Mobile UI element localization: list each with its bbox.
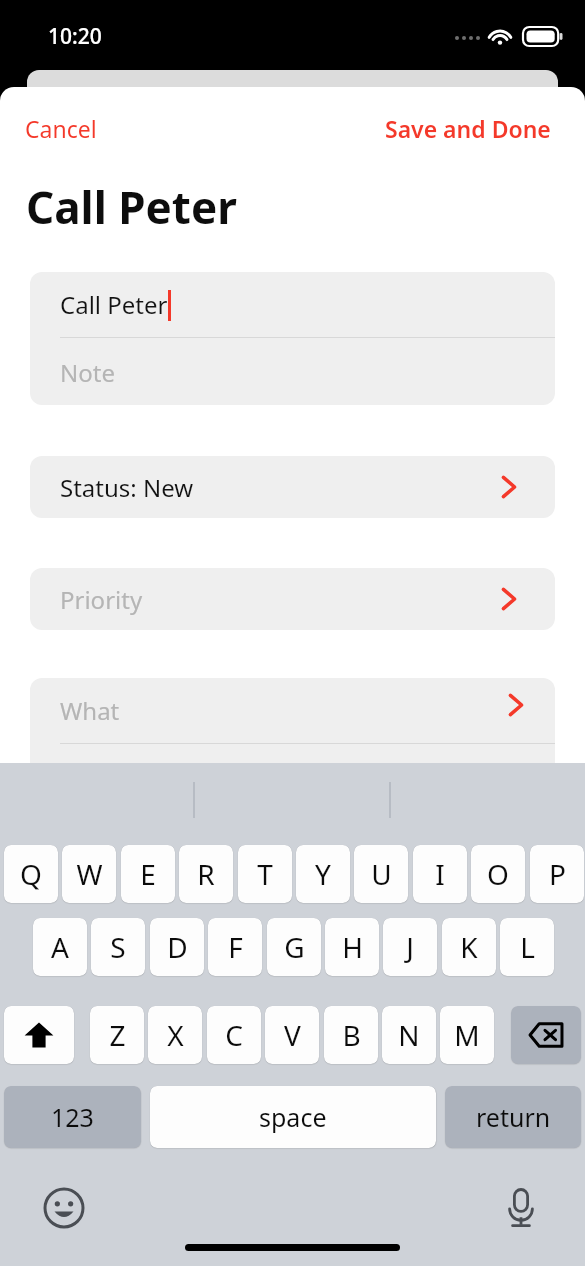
staticText: return xyxy=(476,1100,551,1134)
staticText: Priority xyxy=(60,583,143,616)
button[interactable]: space xyxy=(150,1086,436,1148)
button[interactable]: Dictation xyxy=(495,1182,547,1234)
button[interactable]: J xyxy=(383,918,437,976)
button[interactable]: Backspace xyxy=(511,1006,581,1064)
staticText: Note xyxy=(60,356,115,389)
button[interactable]: V xyxy=(265,1006,319,1064)
button[interactable]: What xyxy=(30,678,555,798)
staticText: Cancel xyxy=(25,113,97,144)
button[interactable]: Save and Done xyxy=(376,107,560,150)
button[interactable]: U xyxy=(354,845,408,903)
button[interactable]: L xyxy=(500,918,554,976)
button[interactable]: 123 xyxy=(4,1086,141,1148)
button[interactable]: Status: New xyxy=(30,456,555,518)
button[interactable]: M xyxy=(440,1006,494,1064)
button[interactable]: A xyxy=(33,918,87,976)
button[interactable]: G xyxy=(267,918,321,976)
button[interactable]: W xyxy=(62,845,116,903)
staticText: N xyxy=(398,1016,420,1054)
button[interactable]: K xyxy=(442,918,496,976)
button[interactable]: I xyxy=(413,845,467,903)
staticText: M xyxy=(454,1016,480,1054)
button[interactable]: H xyxy=(325,918,379,976)
button[interactable]: P xyxy=(530,845,584,903)
button[interactable]: return xyxy=(445,1086,581,1148)
staticText: V xyxy=(284,1016,301,1054)
button[interactable]: B xyxy=(324,1006,378,1064)
button[interactable]: Priority xyxy=(30,568,555,630)
staticText: Y xyxy=(315,855,331,893)
staticText: P xyxy=(549,855,566,893)
staticText: Call Peter xyxy=(60,288,168,321)
staticText: F xyxy=(228,928,243,966)
staticText: I xyxy=(435,855,445,893)
staticText: B xyxy=(342,1016,361,1054)
button[interactable]: T xyxy=(238,845,292,903)
staticText: K xyxy=(460,928,478,966)
staticText: O xyxy=(487,855,509,893)
staticText: U xyxy=(371,855,392,893)
staticText: G xyxy=(284,928,305,966)
staticText: S xyxy=(110,928,126,966)
staticText: R xyxy=(197,855,215,893)
button[interactable]: Emoji keyboard xyxy=(38,1182,90,1234)
staticText: W xyxy=(76,855,103,893)
button[interactable]: S xyxy=(91,918,145,976)
button[interactable]: Y xyxy=(296,845,350,903)
staticText: Z xyxy=(109,1016,126,1054)
staticText: Call Peter xyxy=(26,177,237,237)
button[interactable]: Call Peter xyxy=(30,272,555,405)
staticText: H xyxy=(342,928,363,966)
staticText: J xyxy=(406,928,414,966)
button[interactable]: Cancel xyxy=(16,107,106,150)
button[interactable]: O xyxy=(471,845,525,903)
staticText: 123 xyxy=(51,1100,94,1134)
staticText: 10:20 xyxy=(48,22,102,51)
button[interactable]: X xyxy=(148,1006,202,1064)
button[interactable]: D xyxy=(150,918,204,976)
button[interactable]: E xyxy=(121,845,175,903)
staticText: X xyxy=(167,1016,184,1054)
staticText: Q xyxy=(20,855,42,893)
staticText: A xyxy=(51,928,69,966)
button[interactable]: Shift xyxy=(4,1006,74,1064)
button[interactable]: Q xyxy=(4,845,58,903)
staticText: C xyxy=(225,1016,243,1054)
button[interactable]: Z xyxy=(90,1006,144,1064)
staticText: E xyxy=(140,855,156,893)
staticText: space xyxy=(259,1100,327,1134)
staticText: Status: New xyxy=(60,471,194,504)
button[interactable]: F xyxy=(208,918,262,976)
button[interactable]: N xyxy=(382,1006,436,1064)
staticText: Save and Done xyxy=(385,113,551,144)
staticText: L xyxy=(520,928,535,966)
staticText: D xyxy=(167,928,188,966)
staticText: T xyxy=(257,855,273,893)
button[interactable]: C xyxy=(207,1006,261,1064)
button[interactable]: R xyxy=(179,845,233,903)
staticText: What xyxy=(60,694,120,727)
